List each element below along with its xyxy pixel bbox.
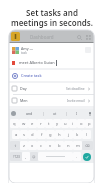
staticText: p <box>88 121 91 127</box>
staticText: h <box>58 132 61 138</box>
staticText: c <box>40 143 43 149</box>
button[interactable]: Google <box>11 111 16 116</box>
staticText: d <box>31 132 34 138</box>
button[interactable]: s <box>20 130 28 139</box>
staticText: t <box>48 121 50 127</box>
staticText: at <box>53 111 57 116</box>
button[interactable]: o <box>77 119 85 128</box>
staticText: ⌫ <box>85 144 90 148</box>
button[interactable]: k <box>73 130 82 139</box>
button[interactable]: z <box>20 141 28 150</box>
button[interactable]: r <box>37 119 45 128</box>
button[interactable]: p <box>85 119 93 128</box>
button[interactable]: Menu <box>11 32 20 41</box>
staticText: . <box>76 154 78 160</box>
staticText: g <box>49 132 52 138</box>
staticText: Create task <box>21 73 42 78</box>
button[interactable]: x <box>28 141 37 150</box>
staticText: ?123 <box>13 155 20 159</box>
staticText: y <box>56 121 59 127</box>
button[interactable]: b <box>55 141 64 150</box>
staticText: m <box>76 143 80 149</box>
staticText: z <box>23 143 25 149</box>
button[interactable]: Search <box>75 33 83 41</box>
staticText: i <box>72 121 74 127</box>
staticText: Set tasks and meetings in seconds. <box>11 7 93 28</box>
staticText: meet Alberto Guian <box>19 60 55 65</box>
staticText: w <box>22 121 26 127</box>
staticText: l <box>86 132 88 138</box>
button[interactable]: Symbols <box>10 152 22 161</box>
staticText: ⇧ <box>14 144 17 148</box>
staticText: e <box>31 121 34 127</box>
button[interactable]: t <box>45 119 53 128</box>
button[interactable]: w <box>19 119 28 128</box>
button[interactable]: . <box>73 152 81 161</box>
staticText: r <box>40 121 42 127</box>
button[interactable]: Emoji <box>30 152 38 161</box>
button[interactable]: u <box>61 119 69 128</box>
button[interactable]: h <box>55 130 64 139</box>
button[interactable]: f <box>37 130 46 139</box>
button[interactable]: Enter <box>83 153 91 161</box>
staticText: n <box>67 143 70 149</box>
staticText: s <box>23 132 26 138</box>
staticText: and <box>26 111 33 116</box>
button[interactable]: meet Alberto Guian <box>9 57 94 68</box>
button[interactable]: e <box>28 119 37 128</box>
staticText: Amy — <box>21 46 34 51</box>
button[interactable]: a <box>12 130 20 139</box>
button[interactable]: , <box>22 152 30 161</box>
button[interactable]: g <box>46 130 55 139</box>
staticText: Invite email <box>67 99 85 103</box>
staticText: , <box>25 154 27 160</box>
button[interactable]: Space <box>38 152 73 161</box>
staticText: Day <box>20 86 27 91</box>
button[interactable]: i <box>69 119 77 128</box>
button[interactable]: Amy — <box>9 43 94 57</box>
staticText: Men <box>20 98 28 103</box>
staticText: task <box>21 51 27 55</box>
button[interactable]: Grid view <box>84 33 92 41</box>
staticText: k <box>76 132 79 138</box>
button[interactable]: l <box>82 130 91 139</box>
button[interactable]: d <box>28 130 37 139</box>
staticText: x <box>31 143 34 149</box>
staticText: f <box>41 132 43 138</box>
button[interactable]: Day <box>9 83 94 94</box>
button[interactable]: v <box>46 141 55 150</box>
staticText: j <box>68 132 70 138</box>
staticText: u <box>64 121 67 127</box>
button[interactable]: Shift <box>10 141 20 150</box>
button[interactable]: y <box>53 119 61 128</box>
button[interactable]: j <box>64 130 73 139</box>
staticText: I <box>76 111 78 116</box>
button[interactable]: q <box>10 119 19 128</box>
staticText: ☺ <box>32 155 36 159</box>
staticText: Dashboard <box>30 34 54 40</box>
button[interactable]: Men <box>9 95 94 106</box>
staticText: q <box>13 121 16 127</box>
button[interactable]: Backspace <box>82 141 93 150</box>
staticText: b <box>58 143 61 149</box>
staticText: o <box>80 121 83 127</box>
button[interactable]: m <box>73 141 82 150</box>
staticText: Set deadline <box>66 87 85 91</box>
button[interactable]: c <box>37 141 46 150</box>
staticText: a <box>15 132 18 138</box>
button[interactable]: n <box>64 141 73 150</box>
staticText: v <box>49 143 52 149</box>
button[interactable]: Create task <box>9 70 94 81</box>
button[interactable]: Voice input <box>87 111 92 116</box>
